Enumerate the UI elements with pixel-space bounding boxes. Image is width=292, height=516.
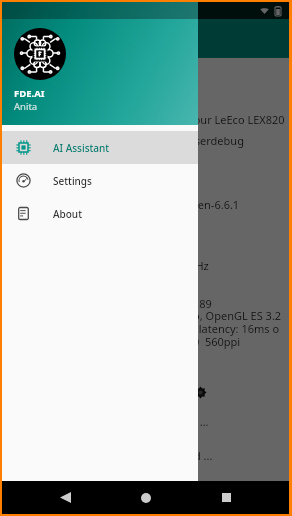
staticText: Anita bbox=[14, 100, 38, 113]
button[interactable]: Settings bbox=[2, 164, 198, 197]
button[interactable]: Back bbox=[48, 481, 82, 514]
staticText: Build 89 bbox=[170, 296, 212, 311]
staticText: userdebug bbox=[188, 133, 244, 148]
staticText: d ... bbox=[194, 448, 213, 463]
button[interactable]: AI Assistant bbox=[2, 131, 198, 164]
button[interactable]: Recents bbox=[209, 481, 243, 514]
staticText: Your LeEco LEX820 bbox=[188, 112, 285, 127]
staticText: About bbox=[53, 207, 82, 221]
button[interactable]: About bbox=[2, 197, 198, 230]
staticText: Settings bbox=[53, 174, 92, 188]
staticText: Adreno, OpenGL ES 3.2 bbox=[162, 308, 282, 323]
staticText: 1920 560ppi bbox=[174, 334, 241, 349]
button[interactable]: Home bbox=[129, 481, 163, 514]
staticText: FDE.AI bbox=[14, 87, 45, 100]
staticText: Touch latency: 16ms o bbox=[165, 321, 280, 336]
staticText: 60 Hz bbox=[180, 258, 209, 273]
staticText: AI Assistant bbox=[53, 141, 110, 155]
staticText: l ... bbox=[194, 414, 209, 429]
staticText: Screen-6.6.1 bbox=[176, 197, 240, 212]
